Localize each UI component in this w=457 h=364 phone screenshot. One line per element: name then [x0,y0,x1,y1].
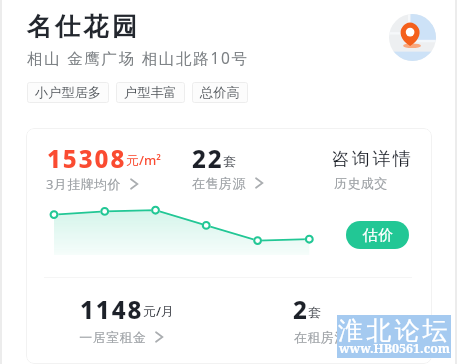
staticText: 套 [308,304,321,320]
staticText: 淮北论坛 [338,315,451,346]
button[interactable]: 在售房源 [192,175,264,191]
button[interactable]: 查看地图 [389,14,436,61]
staticText: 1148 [80,293,144,326]
button[interactable]: 名仕花园 [27,11,141,42]
staticText: 在售房源 [192,175,246,191]
button[interactable]: 22 [192,142,237,175]
staticText: 相山 金鹰广场 相山北路10号 [27,47,249,68]
staticText: 2 [293,293,309,326]
staticText: 在租房源 [294,329,348,345]
button[interactable]: 历史成交 [334,175,388,191]
button[interactable]: 户型丰富 [116,82,185,103]
staticText: 小户型居多 [35,84,101,101]
staticText: 15308 [47,142,127,175]
button[interactable]: 15308 [47,142,162,175]
staticText: www.HB0561.com [339,340,451,357]
staticText: 总价高 [200,84,240,101]
button[interactable]: 1148 [80,293,176,326]
button[interactable]: 估价 [346,221,409,249]
button[interactable]: 在租房源 [294,329,366,345]
staticText: 22 [192,142,224,175]
staticText: 咨询详情 [331,148,414,171]
staticText: 名仕花园 [27,11,141,42]
staticText: 元/m² [126,151,161,169]
staticText: 户型丰富 [124,84,177,101]
button[interactable]: 总价高 [192,82,248,103]
button[interactable]: 3月挂牌均价 [46,175,139,193]
staticText: 元/月 [143,302,175,320]
staticText: 一居室租金 [79,329,146,345]
button[interactable]: 一居室租金 [79,329,164,345]
staticText: 估价 [362,226,394,245]
button[interactable]: 咨询详情 [331,148,414,171]
staticText: 套 [223,153,236,169]
staticText: 3月挂牌均价 [46,175,121,193]
button[interactable]: 小户型居多 [27,82,109,103]
button[interactable]: 2 [293,293,322,326]
staticText: 历史成交 [334,175,388,191]
